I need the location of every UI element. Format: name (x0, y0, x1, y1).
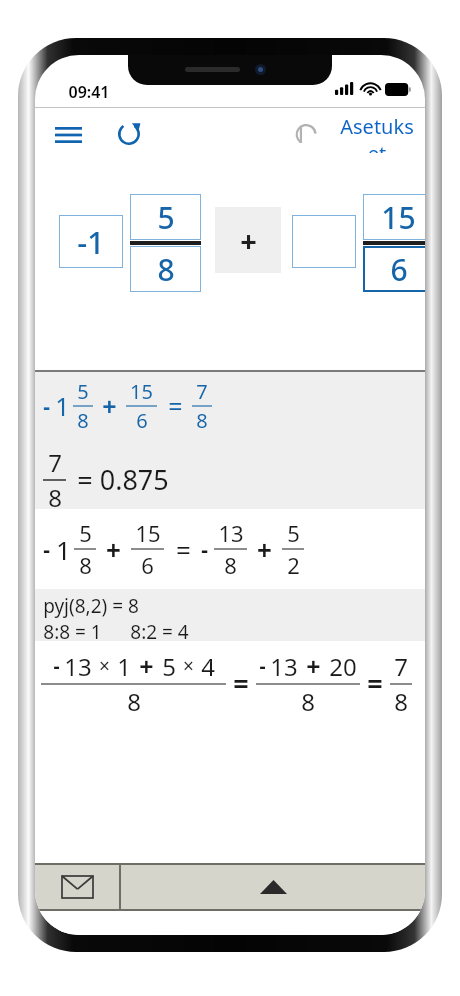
staticText: 5 (162, 650, 176, 683)
staticText: 6 (390, 249, 408, 290)
staticText: 5 (77, 378, 89, 405)
staticText: 8 (394, 685, 408, 718)
staticText: - (43, 535, 50, 564)
staticText: 5 (287, 518, 300, 548)
staticText: + (139, 649, 154, 683)
staticText: 8 (77, 407, 89, 434)
staticText: = (176, 532, 191, 567)
staticText: = (367, 665, 383, 702)
staticText: 8:8 = 1 (43, 619, 102, 645)
button[interactable]: Collapse keypad (121, 865, 425, 909)
button[interactable]: 5 (130, 194, 201, 240)
staticText: = (233, 665, 249, 702)
staticText: × (183, 653, 194, 679)
staticText: 1 (56, 532, 71, 567)
button[interactable]: Whole number field (292, 215, 356, 268)
staticText: + (102, 389, 117, 423)
staticText: 8 (48, 481, 62, 513)
staticText: 8 (224, 550, 237, 580)
staticText: -1 (77, 221, 105, 263)
staticText: + (306, 649, 321, 683)
button[interactable]: Undo (281, 111, 327, 157)
staticText: 8:2 = 4 (130, 619, 189, 645)
staticText: 8 (127, 685, 141, 718)
button[interactable]: Email (35, 865, 119, 909)
staticText: × (99, 653, 110, 679)
staticText: = (168, 389, 183, 423)
button[interactable]: Refresh (106, 110, 152, 156)
staticText: 2 (287, 550, 300, 580)
staticText: 8 (196, 407, 208, 434)
button[interactable]: Asetukset (335, 113, 419, 153)
staticText: - (53, 653, 60, 679)
staticText: - (43, 392, 50, 421)
staticText: - (259, 653, 266, 679)
staticText: = 0.875 (77, 461, 169, 498)
button[interactable]: + (215, 207, 281, 273)
button[interactable]: 15 (363, 194, 425, 240)
staticText: + (106, 532, 121, 567)
staticText: 13 (218, 518, 244, 548)
staticText: - (201, 535, 208, 564)
staticText: 15 (135, 518, 161, 548)
button[interactable]: -1 (59, 215, 123, 268)
staticText: + (257, 532, 272, 567)
staticText: 6 (141, 550, 154, 580)
staticText: 15 (130, 378, 153, 405)
staticText: 6 (136, 407, 148, 434)
staticText: 20 (329, 650, 357, 683)
staticText: + (240, 221, 257, 260)
staticText: 5 (157, 197, 175, 238)
staticText: 15 (381, 197, 416, 238)
button[interactable]: 8 (130, 246, 201, 292)
staticText: 7 (196, 378, 208, 405)
staticText: 13 (270, 650, 298, 683)
staticText: pyj(8,2) = 8 (43, 593, 139, 619)
staticText: Asetukset (335, 113, 419, 153)
staticText: 7 (48, 446, 62, 479)
staticText: 8 (157, 249, 175, 290)
button[interactable]: Menu (45, 112, 91, 158)
staticText: 1 (117, 650, 131, 683)
staticText: 7 (394, 650, 408, 683)
button[interactable]: 6 (363, 246, 425, 292)
staticText: 8 (301, 685, 315, 718)
staticText: 8 (79, 550, 92, 580)
staticText: 1 (55, 389, 70, 423)
staticText: 4 (201, 650, 215, 683)
staticText: 5 (79, 518, 92, 548)
staticText: 09:41 (68, 81, 110, 103)
staticText: 13 (64, 650, 92, 683)
